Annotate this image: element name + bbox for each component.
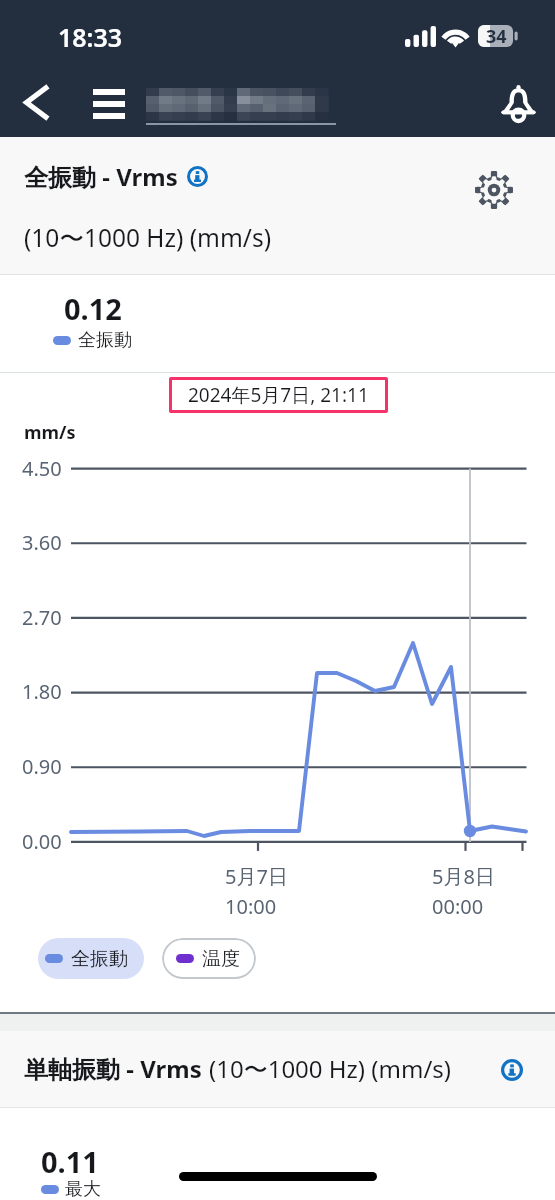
button[interactable]: 全振動 (38, 938, 144, 979)
button[interactable]: Notifications (492, 76, 545, 129)
staticText: 5月7日 (225, 863, 288, 890)
staticText: 全振動 (71, 947, 128, 971)
staticText: 18:33 (58, 20, 123, 54)
button[interactable]: 温度 (162, 938, 256, 979)
button[interactable]: Back (8, 74, 64, 130)
staticText: 0.90 (22, 753, 62, 780)
staticText: 2024年5月7日, 21:11 (188, 382, 369, 408)
staticText: (10〜1000 Hz) (mm/s) (24, 221, 272, 254)
staticText: 34 (486, 24, 507, 46)
staticText: 3.60 (22, 529, 62, 556)
staticText: 全振動 (78, 329, 132, 352)
staticText: 00:00 (432, 893, 484, 920)
staticText: 単軸振動 - Vrms (24, 1052, 202, 1085)
button[interactable]: Settings (465, 161, 523, 219)
staticText: 最大 (65, 1178, 101, 1200)
staticText: 全振動 - Vrms (24, 160, 178, 193)
staticText: 5月8日 (432, 863, 495, 890)
staticText: 2.70 (22, 604, 62, 631)
staticText: (10〜1000 Hz) (mm/s) (209, 1052, 452, 1085)
button[interactable]: Information (490, 1048, 534, 1092)
staticText: 0.12 (64, 289, 122, 328)
button[interactable]: Menu (81, 80, 136, 128)
staticText: 0.00 (22, 828, 62, 855)
staticText: 1.80 (22, 678, 62, 705)
staticText: mm/s (24, 420, 76, 445)
staticText: 温度 (202, 947, 240, 971)
staticText: 10:00 (225, 893, 277, 920)
staticText: 4.50 (22, 455, 62, 482)
staticText: 0.11 (41, 1142, 99, 1181)
